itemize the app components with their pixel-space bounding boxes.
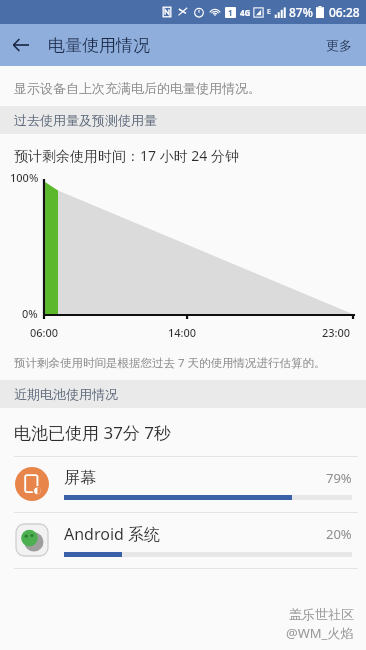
staticText: 06:28	[329, 4, 360, 20]
staticText: 1	[228, 7, 233, 18]
staticText: 更多	[326, 37, 352, 53]
staticText: 0%	[22, 306, 38, 321]
button[interactable]: Back	[0, 24, 42, 66]
staticText: 预计剩余使用时间是根据您过去 7 天的使用情况进行估算的。	[14, 355, 326, 371]
button[interactable]: Android 系统	[0, 513, 366, 568]
staticText: 盖乐世社区	[289, 606, 354, 622]
staticText: Android 系统	[64, 523, 161, 545]
staticText: 06:00	[30, 325, 59, 340]
button[interactable]: 屏幕	[0, 457, 366, 512]
staticText: @WM_火焰	[286, 624, 354, 642]
staticText: 87%	[289, 4, 313, 20]
staticText: 预计剩余使用时间：17 小时 24 分钟	[14, 146, 239, 165]
staticText: 显示设备自上次充满电后的电量使用情况。	[14, 80, 261, 96]
staticText: E	[267, 7, 271, 17]
staticText: 4G	[240, 7, 251, 18]
staticText: 电量使用情况	[48, 35, 150, 56]
button[interactable]: 更多	[312, 27, 366, 63]
staticText: 近期电池使用情况	[14, 386, 118, 402]
staticText: 20%	[326, 525, 352, 543]
staticText: 过去使用量及预测使用量	[14, 112, 157, 128]
staticText: 电池已使用 37分 7秒	[14, 421, 172, 444]
staticText: 屏幕	[64, 468, 96, 488]
staticText: 100%	[10, 170, 39, 185]
staticText: 14:00	[168, 325, 197, 340]
staticText: 23:00	[322, 325, 351, 340]
staticText: 79%	[326, 469, 352, 487]
